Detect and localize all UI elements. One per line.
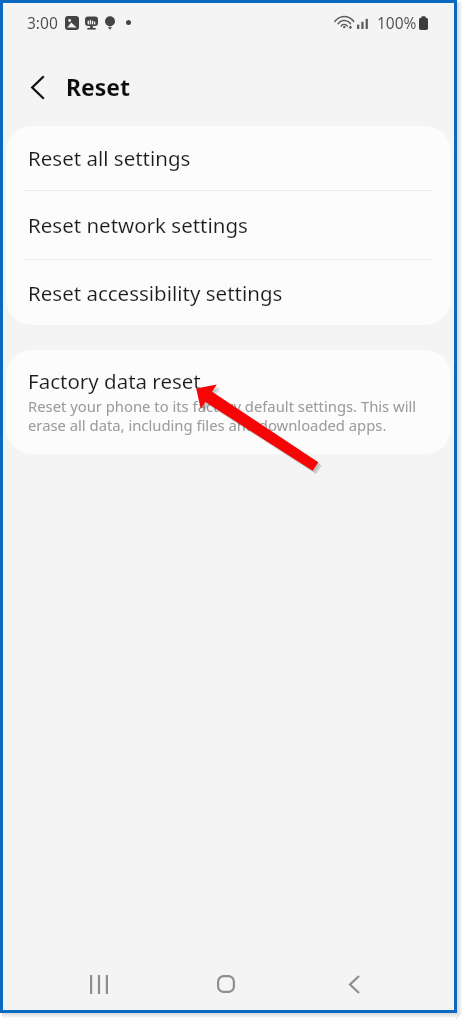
staticText: 3:00 [27,12,58,33]
staticText: 100% [377,12,417,33]
button[interactable]: Factory data reset [6,350,451,454]
button[interactable]: Navigate up [18,67,58,107]
button[interactable]: Reset accessibility settings [6,260,451,325]
staticText: Reset [66,71,131,102]
staticText: Reset accessibility settings [28,279,283,307]
staticText: Reset all settings [28,144,191,172]
staticText: Reset your phone to its factory default … [28,396,431,435]
staticText: Reset network settings [28,211,248,239]
button[interactable]: Back [293,944,423,1010]
staticText: Factory data reset [28,367,201,395]
button[interactable]: Reset network settings [6,191,451,259]
button[interactable]: Recent apps [34,944,163,1010]
button[interactable]: Reset all settings [6,126,451,190]
button[interactable]: Home [163,944,293,1010]
